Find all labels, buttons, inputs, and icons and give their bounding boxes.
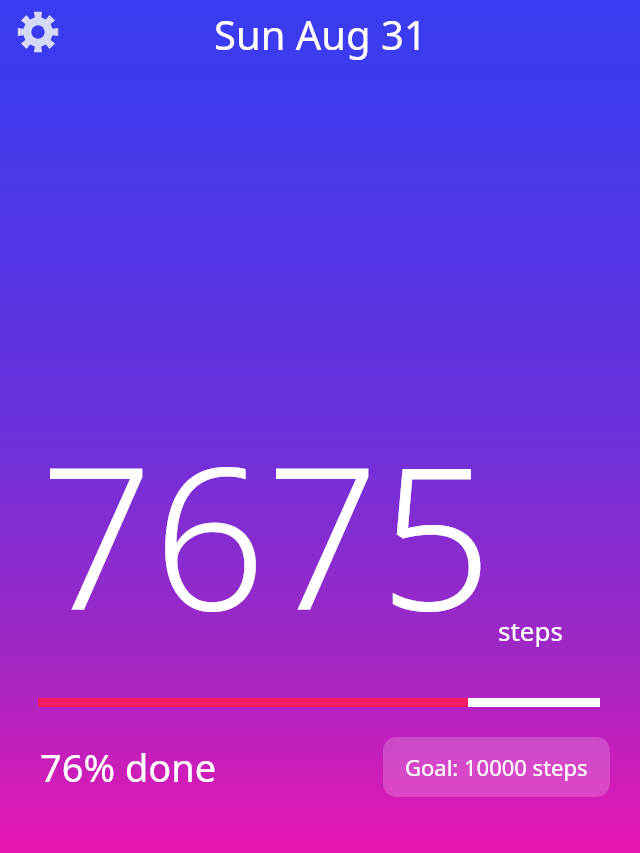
button[interactable]: Settings (12, 6, 64, 58)
staticText: 76% done (40, 741, 217, 793)
staticText: steps (498, 613, 563, 648)
button[interactable]: Goal: 10000 steps (383, 737, 610, 797)
staticText: 7675 (40, 398, 493, 668)
staticText: Goal: 10000 steps (405, 752, 588, 782)
staticText: Sun Aug 31 (214, 7, 427, 61)
